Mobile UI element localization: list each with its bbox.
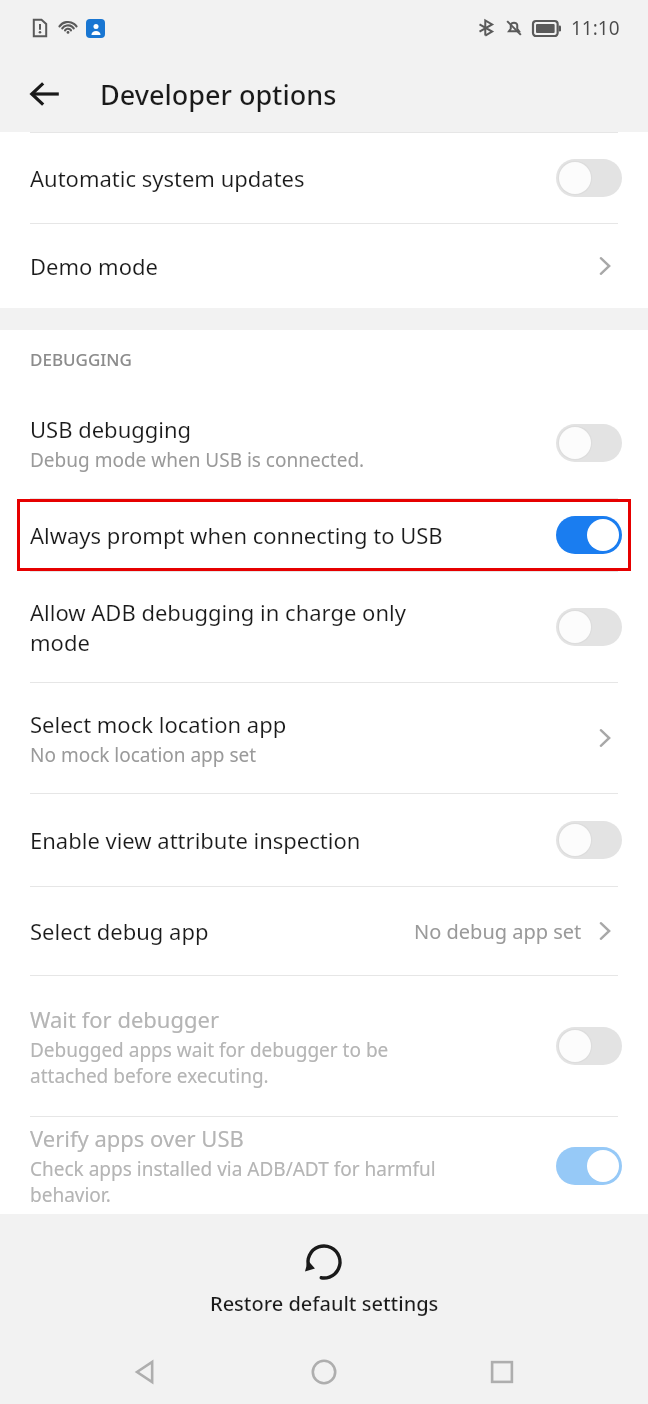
button[interactable]: On [556, 1147, 622, 1185]
staticText: DEBUGGING [30, 348, 132, 371]
button[interactable]: Always prompt when connecting to USB [17, 499, 631, 571]
button[interactable]: Recent apps [470, 1340, 534, 1404]
button[interactable]: Wait for debugger [0, 976, 648, 1116]
button[interactable]: Select debug app [0, 887, 648, 975]
button[interactable]: Restore default settings [0, 1214, 648, 1340]
staticText: Restore default settings [210, 1290, 439, 1317]
button[interactable]: Demo mode [0, 224, 648, 308]
staticText: Always prompt when connecting to USB [30, 520, 443, 550]
staticText: 11:10 [571, 15, 620, 41]
staticText: Check apps installed via ADB/ADT for har… [30, 1156, 436, 1208]
staticText: Demo mode [30, 251, 158, 281]
staticText: Allow ADB debugging in charge only mode [30, 597, 406, 657]
staticText: Debugged apps wait for debugger to be at… [30, 1037, 389, 1089]
button[interactable]: Off [556, 159, 622, 197]
staticText: No mock location app set [30, 742, 257, 768]
staticText: Debug mode when USB is connected. [30, 447, 365, 473]
button[interactable]: On [556, 516, 622, 554]
button[interactable]: Enable view attribute inspection [0, 794, 648, 886]
staticText: Enable view attribute inspection [30, 825, 361, 855]
staticText: Select debug app [30, 916, 209, 946]
staticText: Verify apps over USB [30, 1123, 244, 1153]
button[interactable]: Off [556, 608, 622, 646]
button[interactable]: Verify apps over USB [0, 1117, 648, 1214]
button[interactable]: Allow ADB debugging in charge only mode [0, 572, 648, 682]
staticText: Wait for debugger [30, 1004, 220, 1034]
staticText: Select mock location app [30, 709, 287, 739]
button[interactable]: Select mock location app [0, 683, 648, 793]
button[interactable]: Off [556, 821, 622, 859]
button[interactable]: Back [18, 67, 72, 121]
button[interactable]: Back [114, 1340, 178, 1404]
staticText: No debug app set [414, 918, 582, 945]
staticText: USB debugging [30, 414, 192, 444]
button[interactable]: USB debugging [0, 388, 648, 498]
button[interactable]: Off [556, 1027, 622, 1065]
button[interactable]: Home [292, 1340, 356, 1404]
staticText: Automatic system updates [30, 163, 305, 193]
staticText: Developer options [100, 76, 337, 113]
button[interactable]: Automatic system updates [0, 133, 648, 223]
button[interactable]: Off [556, 424, 622, 462]
